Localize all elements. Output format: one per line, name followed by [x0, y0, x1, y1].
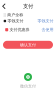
- staticText: 支付优惠券: [10, 27, 30, 32]
- button[interactable]: 零钱支付: [0, 19, 56, 23]
- button[interactable]: Back: [0, 0, 8, 12]
- button[interactable]: 商户全称: [0, 13, 56, 17]
- staticText: 去使用: [42, 27, 54, 32]
- staticText: 商户全称: [7, 12, 23, 17]
- staticText: 零钱支付: [8, 18, 24, 23]
- button[interactable]: 支付优惠券: [0, 27, 56, 32]
- staticText: 零钱支付: [38, 18, 54, 23]
- staticText: 微信支付: [20, 84, 36, 88]
- staticText: 支付: [23, 3, 33, 10]
- staticText: 确认支付: [20, 42, 36, 47]
- button[interactable]: 确认支付: [3, 41, 53, 49]
